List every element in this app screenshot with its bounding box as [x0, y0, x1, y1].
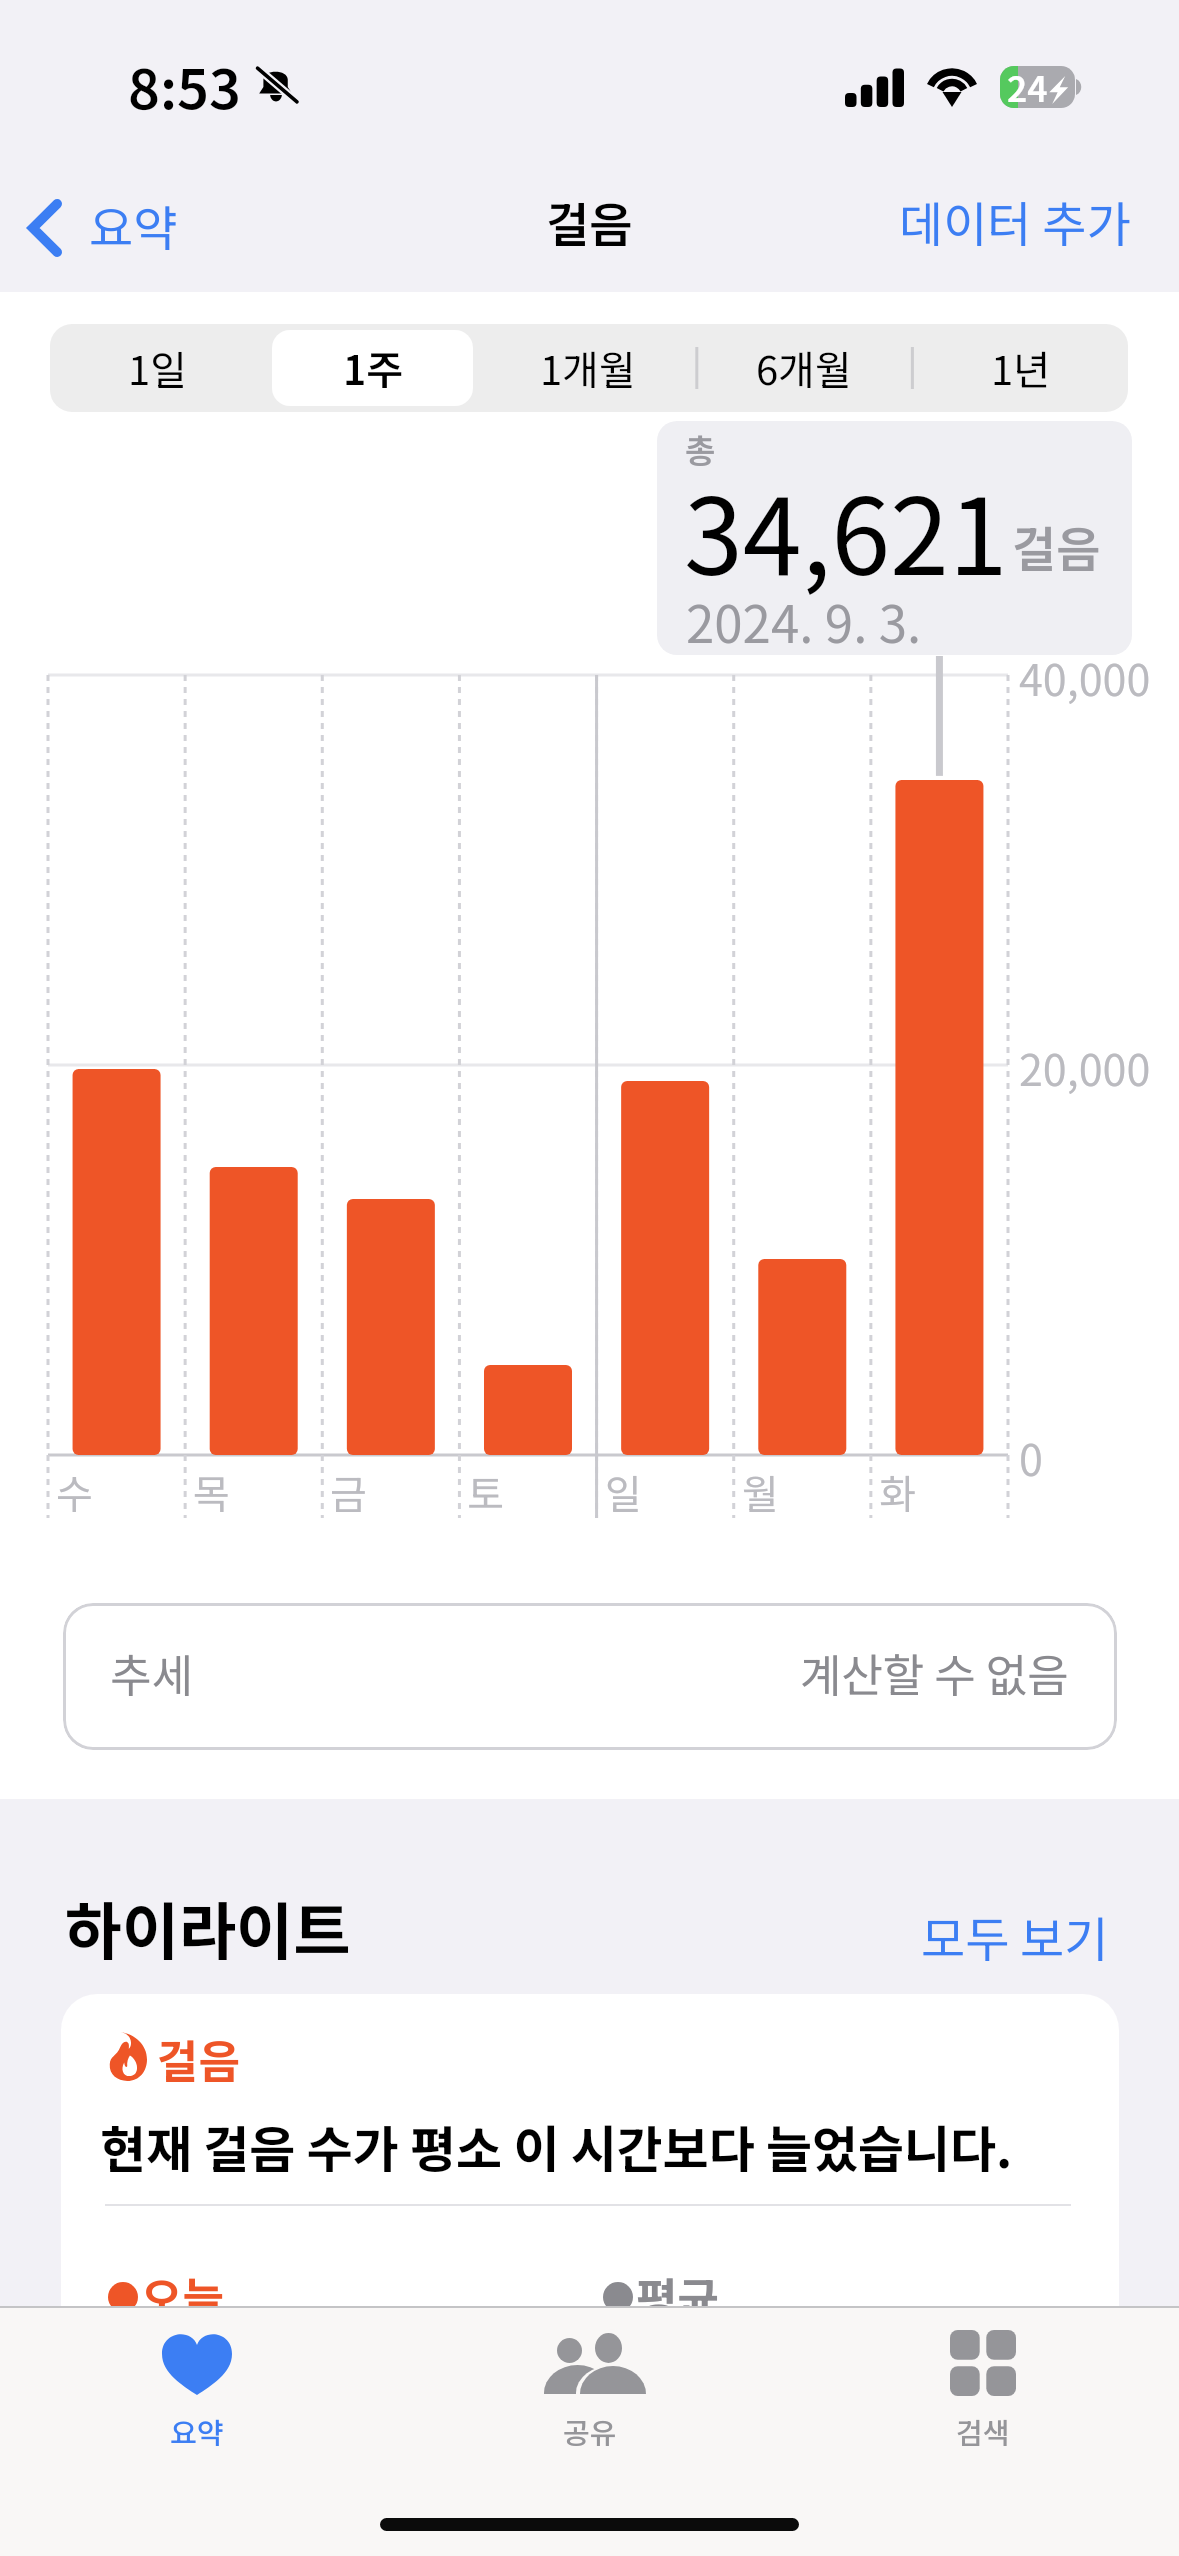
staticText: 추세	[110, 1640, 193, 1705]
staticText: 하이라이트	[65, 1882, 351, 1972]
button[interactable]: 1주	[265, 324, 480, 412]
staticText: 금	[330, 1463, 367, 1521]
button[interactable]: 1개월	[480, 324, 696, 412]
staticText: 검색	[956, 2410, 1010, 2452]
staticText: 0	[1019, 1426, 1043, 1488]
button[interactable]: 뒤로 가기 요약	[16, 182, 190, 268]
staticText: 1년	[991, 339, 1050, 397]
staticText: 현재 걸음 수가 평소 이 시간보다 늘었습니다.	[100, 2110, 1013, 2182]
button[interactable]: 1일	[50, 324, 265, 412]
staticText: 토	[467, 1463, 504, 1521]
staticText: 목	[193, 1463, 230, 1521]
button[interactable]: 6개월	[696, 324, 912, 412]
staticText: 20,000	[1019, 1036, 1151, 1098]
button[interactable]: 공유	[393, 2308, 786, 2452]
staticText: 총	[685, 425, 716, 473]
staticText: 평균	[636, 2264, 719, 2329]
staticText: 40,000	[1019, 646, 1151, 708]
staticText: 2024. 9. 3.	[686, 584, 922, 655]
staticText: 수	[56, 1463, 93, 1521]
staticText: 공유	[563, 2410, 617, 2452]
staticText: 오늘	[141, 2264, 224, 2329]
staticText: 걸음	[546, 187, 633, 255]
staticText: 요약	[89, 190, 178, 260]
staticText: 화	[879, 1463, 916, 1521]
button[interactable]: 걸음	[61, 1994, 1119, 2394]
staticText: 6개월	[756, 339, 852, 397]
staticText: 1일	[128, 339, 187, 397]
staticText: 데이터 추가	[899, 186, 1131, 256]
staticText: 걸음	[1012, 511, 1101, 581]
staticText: 모두 보기	[921, 1901, 1109, 1971]
staticText: 일	[605, 1463, 642, 1521]
staticText: 24	[1007, 61, 1048, 103]
button[interactable]: 1년	[912, 324, 1128, 412]
staticText: 34,621	[684, 452, 1008, 605]
button[interactable]: 데이터 추가	[887, 176, 1143, 266]
staticText: 8:53	[128, 45, 241, 125]
button[interactable]: 모두 보기	[909, 1891, 1121, 1981]
button[interactable]: 검색	[786, 2308, 1179, 2452]
staticText: 1개월	[540, 339, 636, 397]
staticText: 1주	[343, 339, 403, 397]
staticText: 요약	[170, 2410, 224, 2452]
staticText: 월	[742, 1463, 779, 1521]
staticText: 걸음	[157, 2026, 240, 2091]
staticText: 계산할 수 없음	[800, 1640, 1069, 1705]
button[interactable]: 추세	[63, 1603, 1117, 1750]
button[interactable]: 요약	[0, 2308, 393, 2452]
